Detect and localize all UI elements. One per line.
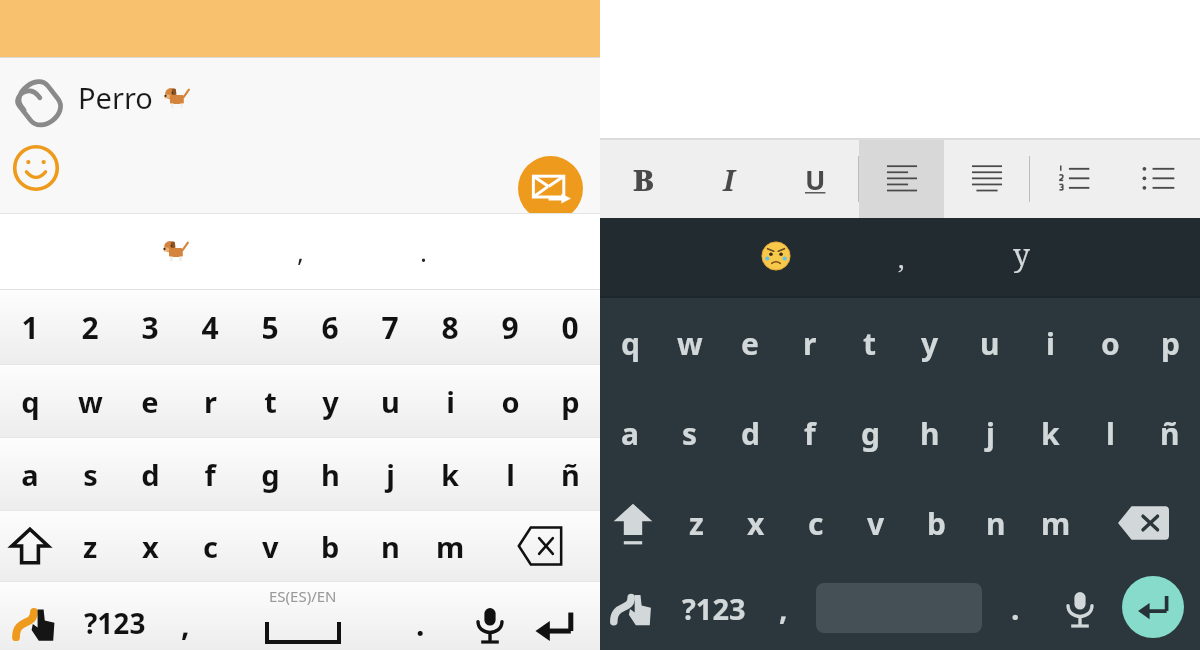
button[interactable]: i xyxy=(1020,298,1080,388)
button[interactable]: v xyxy=(240,511,300,581)
button[interactable]: , xyxy=(160,596,210,650)
button[interactable]: e xyxy=(120,365,180,437)
button[interactable]: h xyxy=(900,388,960,478)
button[interactable]: b xyxy=(300,511,360,581)
button[interactable]: j xyxy=(360,438,420,510)
button[interactable]: h xyxy=(300,438,360,510)
button[interactable]: 2 xyxy=(60,290,120,364)
button[interactable]: ?123 xyxy=(72,592,158,650)
button[interactable]: w xyxy=(660,298,720,388)
button[interactable]: c xyxy=(180,511,240,581)
button[interactable]: Handwriting input xyxy=(608,580,666,638)
button[interactable]: , xyxy=(275,228,325,274)
button[interactable]: y xyxy=(998,228,1044,280)
button[interactable]: 1 xyxy=(0,290,60,364)
button[interactable]: o xyxy=(1080,298,1140,388)
button[interactable]: Send xyxy=(518,156,583,221)
button[interactable]: i xyxy=(420,365,480,437)
button[interactable]: Backspace xyxy=(480,511,600,581)
button[interactable]: e xyxy=(720,298,780,388)
button[interactable]: m xyxy=(420,511,480,581)
button[interactable]: a xyxy=(0,438,60,510)
button[interactable]: ñ xyxy=(540,438,600,510)
button[interactable]: Italic xyxy=(686,140,772,218)
button[interactable]: 7 xyxy=(360,290,420,364)
button[interactable]: n xyxy=(966,478,1026,568)
button[interactable]: r xyxy=(180,365,240,437)
button[interactable]: Crying emoji suggestion xyxy=(760,240,792,272)
button[interactable]: t xyxy=(840,298,900,388)
button[interactable]: l xyxy=(480,438,540,510)
button[interactable]: j xyxy=(960,388,1020,478)
button[interactable]: q xyxy=(0,365,60,437)
button[interactable]: Voice input xyxy=(462,596,518,650)
button[interactable]: Enter xyxy=(1122,576,1184,638)
button[interactable]: p xyxy=(540,365,600,437)
button[interactable]: a xyxy=(600,388,660,478)
staticText: p xyxy=(1161,323,1180,364)
button[interactable]: g xyxy=(240,438,300,510)
button[interactable]: 9 xyxy=(480,290,540,364)
button[interactable]: ñ xyxy=(1140,388,1200,478)
button[interactable]: , xyxy=(878,234,924,280)
staticText: w xyxy=(677,323,703,364)
button[interactable]: Shift xyxy=(600,478,666,568)
button[interactable]: ?123 xyxy=(668,578,760,638)
button[interactable]: p xyxy=(1140,298,1200,388)
button[interactable]: . xyxy=(992,582,1038,634)
button[interactable]: . xyxy=(395,596,445,650)
button[interactable]: s xyxy=(60,438,120,510)
button[interactable]: k xyxy=(1020,388,1080,478)
button[interactable]: g xyxy=(840,388,900,478)
button[interactable]: z xyxy=(60,511,120,581)
button[interactable]: 8 xyxy=(420,290,480,364)
button[interactable]: d xyxy=(120,438,180,510)
button[interactable]: b xyxy=(906,478,966,568)
button[interactable]: t xyxy=(240,365,300,437)
button[interactable]: Numbered list xyxy=(1030,140,1115,218)
button[interactable]: w xyxy=(60,365,120,437)
button[interactable]: o xyxy=(480,365,540,437)
button[interactable]: Voice input xyxy=(1052,580,1108,636)
button[interactable]: Dog emoji suggestion xyxy=(160,236,190,266)
button[interactable]: k xyxy=(420,438,480,510)
button[interactable]: 3 xyxy=(120,290,180,364)
button[interactable]: x xyxy=(120,511,180,581)
button[interactable]: Bold xyxy=(600,140,686,218)
button[interactable]: 6 xyxy=(300,290,360,364)
button[interactable]: r xyxy=(780,298,840,388)
button[interactable]: y xyxy=(900,298,960,388)
button[interactable]: f xyxy=(180,438,240,510)
button[interactable]: Align left xyxy=(859,140,944,218)
button[interactable]: . xyxy=(398,228,448,274)
button[interactable]: 4 xyxy=(180,290,240,364)
button[interactable]: f xyxy=(780,388,840,478)
button[interactable]: Bulleted list xyxy=(1115,140,1200,218)
button[interactable]: Shift xyxy=(0,511,60,581)
button[interactable]: Underline xyxy=(772,140,858,218)
button[interactable]: Backspace xyxy=(1086,478,1200,568)
button[interactable]: y xyxy=(300,365,360,437)
button[interactable]: Enter xyxy=(524,596,584,650)
button[interactable]: Align justify xyxy=(944,140,1029,218)
button[interactable]: c xyxy=(786,478,846,568)
button[interactable]: v xyxy=(846,478,906,568)
button[interactable]: n xyxy=(360,511,420,581)
button[interactable]: l xyxy=(1080,388,1140,478)
button[interactable]: 5 xyxy=(240,290,300,364)
button[interactable]: Handwriting input xyxy=(10,594,70,650)
button[interactable]: Attach file xyxy=(8,70,64,126)
button[interactable]: Space xyxy=(218,586,388,650)
button[interactable]: 0 xyxy=(540,290,600,364)
button[interactable]: , xyxy=(760,582,806,634)
button[interactable]: q xyxy=(600,298,660,388)
button[interactable]: m xyxy=(1026,478,1086,568)
button[interactable]: u xyxy=(960,298,1020,388)
button[interactable]: Insert emoji xyxy=(8,140,64,196)
button[interactable]: d xyxy=(720,388,780,478)
button[interactable]: s xyxy=(660,388,720,478)
button[interactable]: x xyxy=(726,478,786,568)
button[interactable]: u xyxy=(360,365,420,437)
button[interactable]: z xyxy=(666,478,726,568)
